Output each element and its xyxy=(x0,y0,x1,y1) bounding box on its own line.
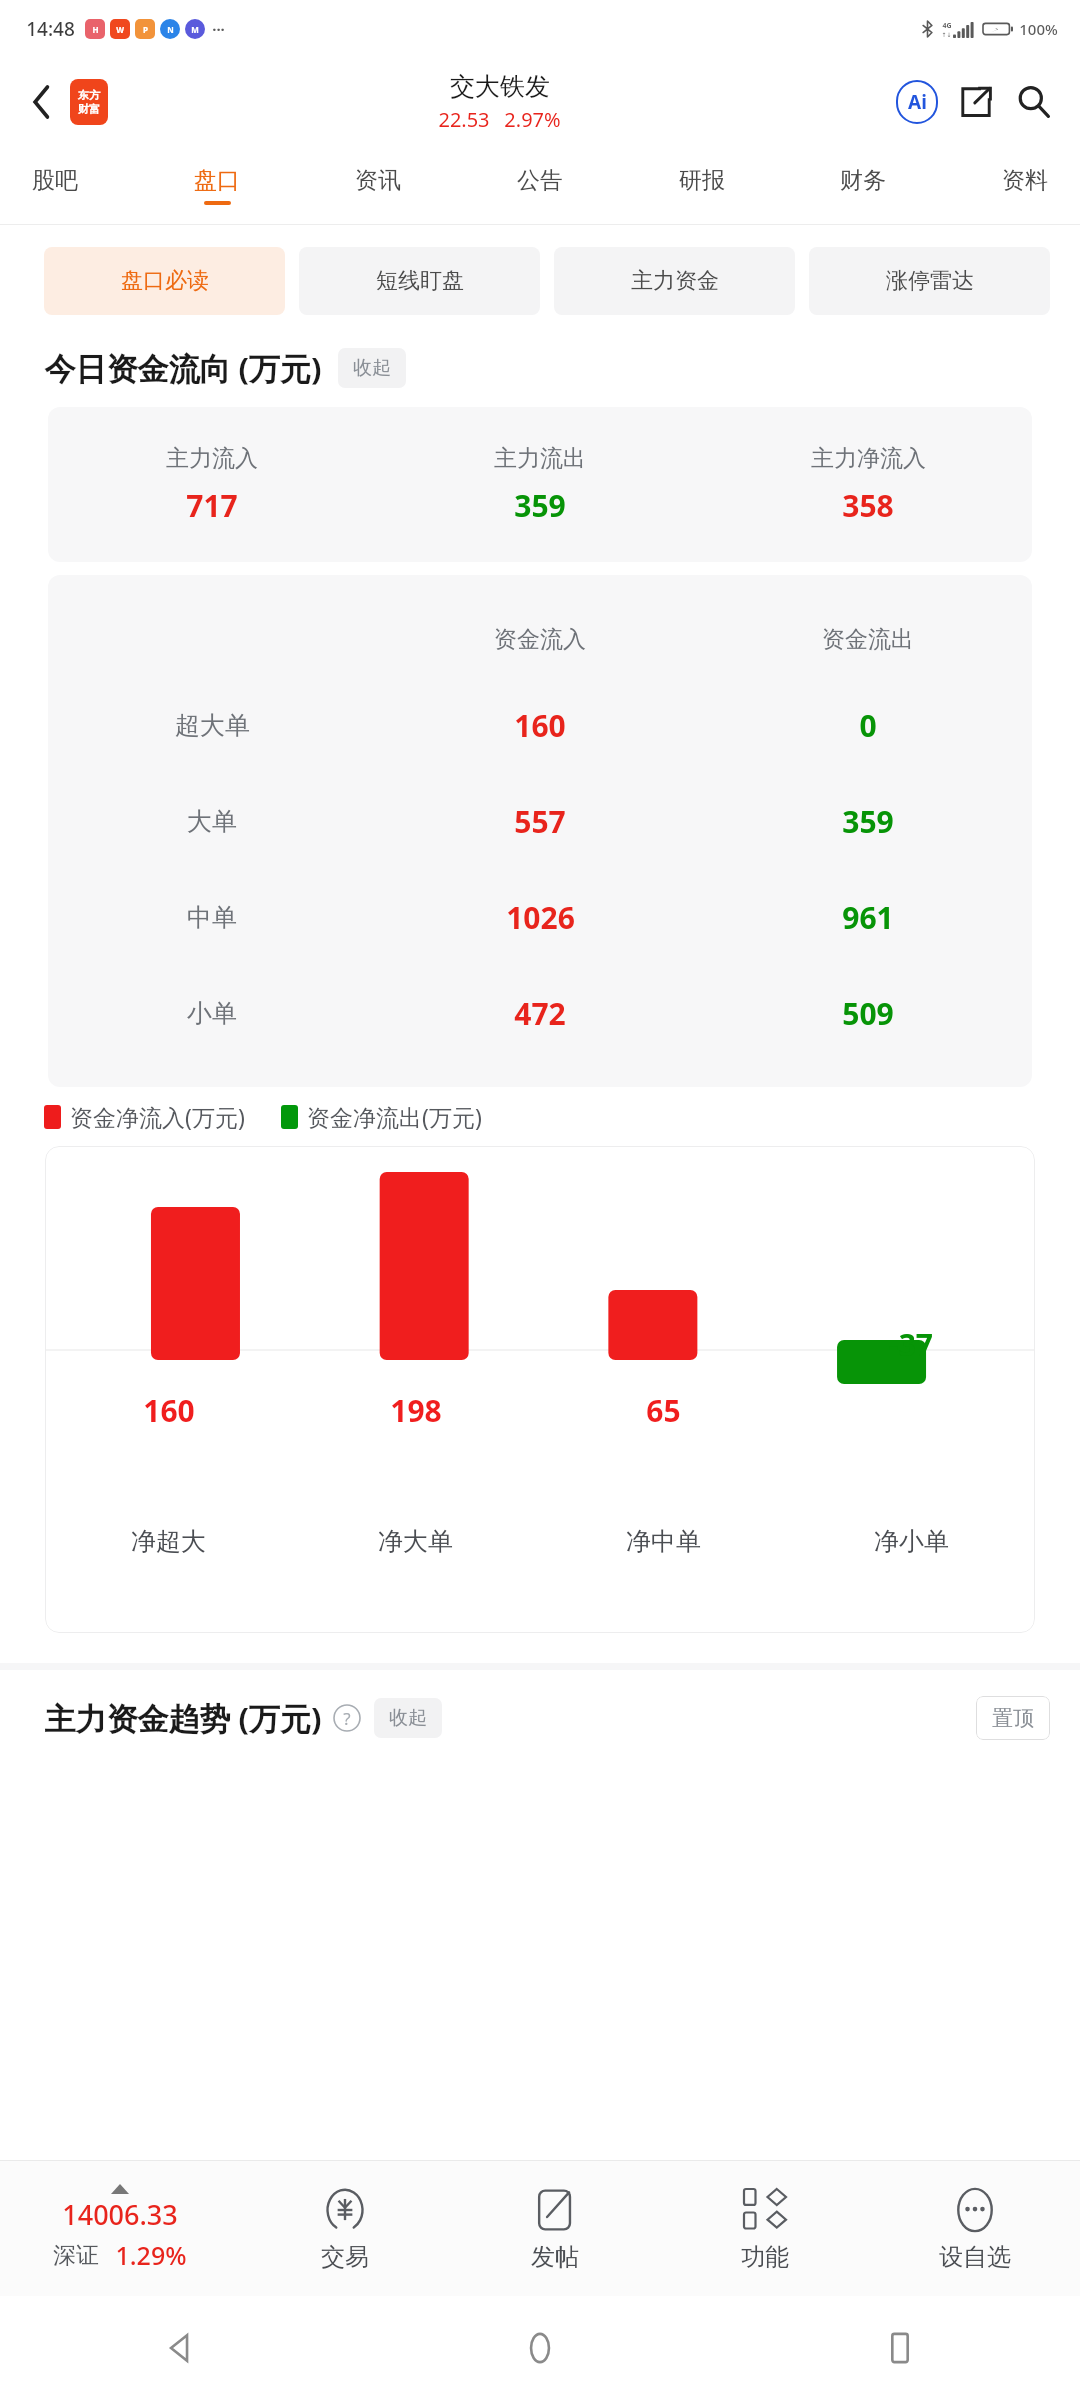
staticText: 股吧 xyxy=(32,166,78,195)
button[interactable]: 盘口 xyxy=(188,146,246,224)
button[interactable]: Help xyxy=(332,1703,362,1733)
staticText: 0 xyxy=(859,705,877,746)
staticText: 功能 xyxy=(741,2242,789,2272)
staticText: 主力资金趋势 (万元) xyxy=(44,1697,322,1739)
staticText: 359 xyxy=(514,485,566,526)
button[interactable]: Home xyxy=(360,2296,720,2400)
staticText: 交易 xyxy=(321,2242,369,2272)
button[interactable]: Back xyxy=(18,79,64,125)
staticText: ? xyxy=(343,1707,351,1730)
button[interactable]: Back xyxy=(0,2296,360,2400)
staticText: 557 xyxy=(514,801,566,842)
staticText: 资讯 xyxy=(355,166,401,195)
staticText: 小单 xyxy=(187,998,237,1029)
button[interactable]: East Money logo xyxy=(70,79,108,125)
staticText: 发帖 xyxy=(531,2242,579,2272)
staticText: 198 xyxy=(390,1390,442,1431)
staticText: 359 xyxy=(842,801,894,842)
staticText: 472 xyxy=(514,993,566,1034)
staticText: 资料 xyxy=(1002,166,1048,195)
button[interactable]: 功能 xyxy=(660,2178,870,2278)
staticText: P xyxy=(143,24,148,35)
staticText: 主力流入 xyxy=(166,444,258,473)
staticText: 主力净流入 xyxy=(811,444,926,473)
staticText: W xyxy=(116,24,124,35)
staticText: 设自选 xyxy=(939,2242,1011,2272)
button[interactable]: 股吧 xyxy=(26,146,84,224)
staticText: 资金净流出(万元) xyxy=(307,1101,482,1132)
staticText: 65 xyxy=(646,1390,681,1431)
staticText: 收起 xyxy=(389,1706,427,1730)
staticText: 置顶 xyxy=(992,1705,1034,1731)
staticText: 160 xyxy=(143,1390,195,1431)
staticText: 14:48 xyxy=(26,16,75,42)
staticText: 财务 xyxy=(840,166,886,195)
button[interactable]: AI assistant xyxy=(892,77,942,127)
staticText: 1026 xyxy=(506,897,575,938)
staticText: 717 xyxy=(186,485,238,526)
staticText: 资金流入 xyxy=(494,625,586,654)
button[interactable]: 财务 xyxy=(834,146,892,224)
staticText: 公告 xyxy=(517,166,563,195)
button[interactable]: 交易 xyxy=(240,2178,450,2278)
button[interactable]: 发帖 xyxy=(450,2178,660,2278)
button[interactable]: 涨停雷达 xyxy=(809,247,1050,315)
staticText: H xyxy=(92,24,99,35)
button[interactable]: 盘口必读 xyxy=(44,247,285,315)
staticText: 盘口 xyxy=(194,166,240,195)
staticText: N xyxy=(167,24,174,35)
staticText: -37 xyxy=(889,1324,933,1365)
staticText: 100% xyxy=(1019,19,1058,39)
staticText: 财富 xyxy=(78,102,100,116)
button[interactable]: Search xyxy=(1010,78,1058,126)
staticText: ··· xyxy=(212,19,225,39)
staticText: 深证 xyxy=(53,2241,99,2270)
staticText: 2.97% xyxy=(504,106,561,133)
staticText: 4G xyxy=(942,21,952,31)
staticText: 160 xyxy=(514,705,566,746)
button[interactable]: 置顶 xyxy=(976,1696,1050,1740)
staticText: 14006.33 xyxy=(62,2196,178,2233)
button[interactable]: 公告 xyxy=(511,146,569,224)
button[interactable]: 收起 xyxy=(338,348,406,388)
button[interactable]: Recents xyxy=(720,2296,1080,2400)
staticText: ↑↓ xyxy=(941,31,952,38)
staticText: 净超大 xyxy=(131,1526,206,1557)
button[interactable]: 14006.33 xyxy=(0,2184,240,2272)
staticText: 盘口必读 xyxy=(121,267,209,295)
button[interactable]: -37 xyxy=(45,1146,1035,1633)
staticText: 961 xyxy=(842,897,894,938)
staticText: Ai xyxy=(908,89,927,115)
button[interactable]: 收起 xyxy=(374,1698,442,1738)
button[interactable]: 主力流入 xyxy=(48,407,1032,562)
staticText: 净中单 xyxy=(626,1526,701,1557)
button[interactable]: 短线盯盘 xyxy=(299,247,540,315)
button[interactable]: 资料 xyxy=(996,146,1054,224)
staticText: 1.29% xyxy=(115,2238,187,2272)
staticText: 短线盯盘 xyxy=(376,267,464,295)
staticText: 涨停雷达 xyxy=(886,267,974,295)
button[interactable]: 资金流入 xyxy=(48,575,1032,1087)
staticText: 研报 xyxy=(679,166,725,195)
staticText: 净大单 xyxy=(378,1526,453,1557)
button[interactable]: 研报 xyxy=(673,146,731,224)
staticText: 大单 xyxy=(187,806,237,837)
staticText: 资金流出 xyxy=(822,625,914,654)
staticText: 主力资金 xyxy=(631,267,719,295)
button[interactable]: 资讯 xyxy=(349,146,407,224)
staticText: 358 xyxy=(842,485,894,526)
staticText: 资金净流入(万元) xyxy=(70,1101,245,1132)
staticText: 中单 xyxy=(187,902,237,933)
button[interactable]: 设自选 xyxy=(870,2178,1080,2278)
staticText: 今日资金流向 (万元) xyxy=(44,347,322,389)
staticText: 超大单 xyxy=(175,710,250,741)
staticText: 东方 xyxy=(78,88,100,102)
staticText: M xyxy=(191,24,199,35)
button[interactable]: Share xyxy=(952,78,1000,126)
staticText: 收起 xyxy=(353,356,391,380)
staticText: 509 xyxy=(842,993,894,1034)
staticText: 22.53 xyxy=(438,106,490,133)
staticText: 交大铁发 xyxy=(450,71,550,102)
button[interactable]: 主力资金 xyxy=(554,247,795,315)
staticText: 净小单 xyxy=(874,1526,949,1557)
